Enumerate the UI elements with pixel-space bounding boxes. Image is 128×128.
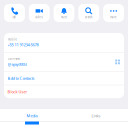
button[interactable]: Block User — [4, 85, 124, 98]
button[interactable]: video — [29, 4, 50, 22]
button[interactable]: Links — [64, 109, 128, 128]
button[interactable]: call — [4, 4, 25, 22]
staticText: search — [85, 15, 93, 19]
button[interactable]: mute — [54, 4, 74, 22]
button[interactable]: mobile — [4, 33, 124, 52]
staticText: call — [12, 15, 16, 19]
button[interactable]: Media — [0, 109, 64, 128]
button[interactable]: search — [78, 4, 99, 22]
staticText: @ajay0003 — [7, 61, 26, 67]
button[interactable]: more — [103, 4, 124, 22]
staticText: Add to Contacts — [7, 76, 34, 81]
staticText: username — [7, 57, 20, 60]
staticText: Links — [91, 113, 100, 118]
staticText: mobile — [7, 38, 17, 41]
staticText: mute — [60, 15, 67, 19]
staticText: video — [35, 15, 43, 19]
staticText: +55 11 91234-5678 — [7, 42, 38, 47]
button[interactable]: Add to Contacts — [4, 72, 124, 85]
staticText: more — [110, 15, 117, 19]
staticText: Block User — [7, 89, 27, 94]
button[interactable]: username — [4, 52, 124, 71]
staticText: Media — [26, 113, 37, 118]
